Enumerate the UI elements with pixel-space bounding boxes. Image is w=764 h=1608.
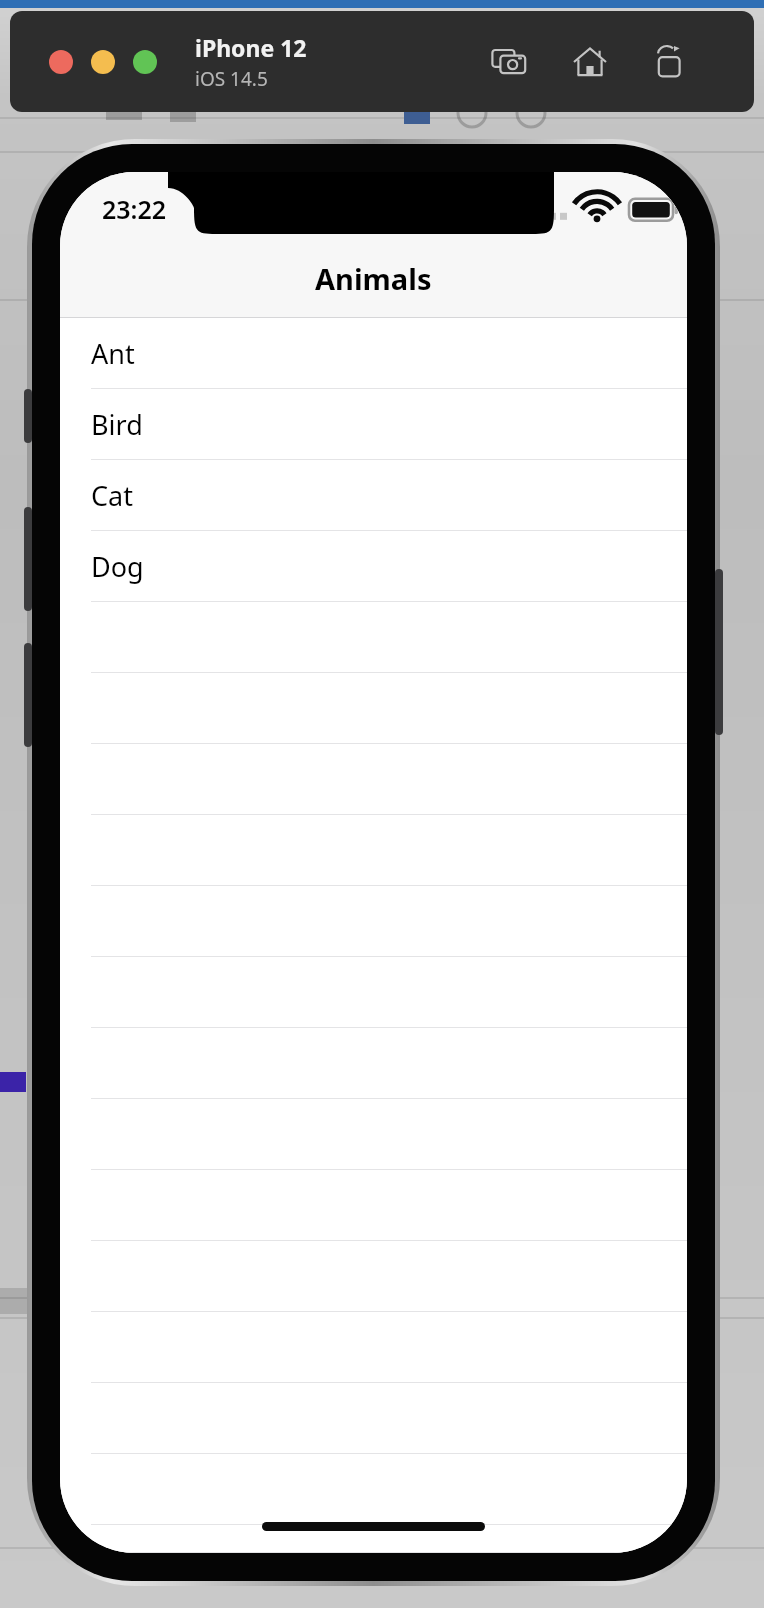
button[interactable] (60, 673, 687, 744)
button[interactable] (60, 1099, 687, 1170)
button[interactable] (60, 815, 687, 886)
button[interactable] (60, 1241, 687, 1312)
button[interactable] (60, 1170, 687, 1241)
button[interactable] (60, 602, 687, 673)
button[interactable] (60, 744, 687, 815)
staticText: iPhone 12 (195, 32, 307, 63)
button[interactable] (60, 1312, 687, 1383)
staticText: iOS 14.5 (195, 66, 268, 92)
button[interactable] (60, 1525, 687, 1553)
button[interactable] (60, 886, 687, 957)
button[interactable]: Ant (60, 318, 687, 389)
staticText: Cat (91, 477, 133, 514)
button[interactable]: Rotate (648, 40, 692, 84)
button[interactable]: Minimize (91, 50, 115, 74)
staticText: Ant (91, 335, 135, 372)
staticText: Bird (91, 406, 143, 443)
button[interactable] (60, 1383, 687, 1454)
staticText: 23:22 (102, 192, 167, 226)
button[interactable]: Close (49, 50, 73, 74)
button[interactable]: Zoom (133, 50, 157, 74)
button[interactable]: Cat (60, 460, 687, 531)
button[interactable] (60, 957, 687, 1028)
button[interactable] (60, 1028, 687, 1099)
button[interactable]: Home (568, 40, 612, 84)
button[interactable]: Bird (60, 389, 687, 460)
button[interactable]: Take screenshot (488, 40, 532, 84)
button[interactable]: Dog (60, 531, 687, 602)
staticText: Dog (91, 548, 144, 585)
staticText: Animals (315, 259, 432, 298)
button[interactable] (60, 1454, 687, 1525)
